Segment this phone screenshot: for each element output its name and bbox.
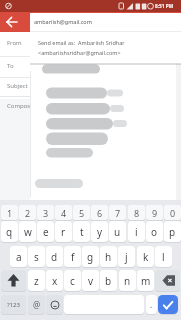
button[interactable]: 8 xyxy=(128,205,145,220)
staticText: y xyxy=(97,225,103,239)
staticText: b xyxy=(105,274,112,288)
staticText: v xyxy=(88,274,94,288)
staticText: h xyxy=(105,250,112,264)
staticText: 3 xyxy=(43,207,49,219)
button[interactable]: s xyxy=(28,246,45,267)
staticText: f xyxy=(71,250,75,264)
staticText: g xyxy=(87,250,94,264)
staticText: 4 xyxy=(61,207,67,219)
button[interactable]: h xyxy=(100,246,117,267)
staticText: p xyxy=(169,225,176,239)
button[interactable]: f xyxy=(64,246,81,267)
staticText: k xyxy=(143,250,149,264)
button[interactable] xyxy=(30,13,181,31)
button[interactable]: o xyxy=(146,221,163,242)
button[interactable]: i xyxy=(128,221,145,242)
button[interactable] xyxy=(46,295,63,314)
button[interactable]: j xyxy=(118,246,135,267)
staticText: . xyxy=(150,299,153,310)
staticText: To xyxy=(7,62,14,70)
button[interactable]: e xyxy=(37,221,54,242)
staticText: n xyxy=(124,274,131,288)
button[interactable]: 2 xyxy=(19,205,36,220)
staticText: Send email as: Ambariish Sridhar xyxy=(38,39,125,46)
staticText: @ xyxy=(33,299,41,310)
button[interactable]: w xyxy=(19,221,36,242)
staticText: s xyxy=(34,250,39,264)
staticText: 0 xyxy=(170,207,176,219)
button[interactable]: 5 xyxy=(73,205,90,220)
staticText: q xyxy=(6,225,13,239)
button[interactable]: . xyxy=(146,295,157,314)
button[interactable]: u xyxy=(109,221,126,242)
button[interactable]: 1 xyxy=(1,205,18,220)
button[interactable]: z xyxy=(28,270,45,291)
button[interactable]: 7 xyxy=(109,205,126,220)
staticText: r xyxy=(61,225,66,239)
button[interactable]: d xyxy=(46,246,63,267)
staticText: o xyxy=(151,225,158,239)
button[interactable]: 9 xyxy=(146,205,163,220)
staticText: z xyxy=(34,274,39,288)
button[interactable] xyxy=(155,270,180,291)
staticText: w xyxy=(24,225,32,239)
button[interactable]: r xyxy=(55,221,72,242)
button[interactable]: q xyxy=(1,221,18,242)
staticText: 2 xyxy=(25,207,31,219)
button[interactable]: n xyxy=(119,270,136,291)
staticText: i xyxy=(135,225,138,239)
button[interactable]: y xyxy=(91,221,108,242)
button[interactable] xyxy=(0,12,181,32)
button[interactable]: x xyxy=(46,270,63,291)
staticText: d xyxy=(51,250,58,264)
button[interactable]: l xyxy=(155,246,172,267)
button[interactable]: g xyxy=(82,246,99,267)
staticText: a xyxy=(16,250,22,264)
button[interactable]: c xyxy=(64,270,81,291)
staticText: 9 xyxy=(152,207,158,219)
button[interactable]: b xyxy=(100,270,117,291)
staticText: Compos xyxy=(7,102,31,110)
button[interactable]: p xyxy=(164,221,181,242)
button[interactable] xyxy=(1,270,26,291)
button[interactable]: v xyxy=(82,270,99,291)
staticText: t xyxy=(80,225,84,239)
staticText: Subject xyxy=(7,82,28,90)
staticText: j xyxy=(125,250,128,264)
staticText: ?123 xyxy=(7,301,20,309)
button[interactable]: k xyxy=(137,246,154,267)
button[interactable] xyxy=(30,32,181,64)
staticText: c xyxy=(70,274,75,288)
staticText: m xyxy=(141,274,151,288)
staticText: 7 xyxy=(115,207,121,219)
staticText: 1 xyxy=(7,207,13,219)
button[interactable] xyxy=(158,295,178,314)
button[interactable]: @ xyxy=(28,295,45,314)
button[interactable]: a xyxy=(10,246,27,267)
staticText: <ambariishsridhar@gmail.com> xyxy=(38,49,121,56)
button[interactable]: 0 xyxy=(164,205,181,220)
staticText: From xyxy=(7,39,22,47)
button[interactable]: 3 xyxy=(37,205,54,220)
staticText: 6 xyxy=(97,207,103,219)
button[interactable]: m xyxy=(137,270,154,291)
staticText: u xyxy=(114,225,121,239)
button[interactable]: 6 xyxy=(91,205,108,220)
button[interactable] xyxy=(0,12,24,32)
staticText: l xyxy=(162,250,165,264)
staticText: x xyxy=(52,274,58,288)
button[interactable]: 4 xyxy=(55,205,72,220)
button[interactable]: ?123 xyxy=(1,295,26,314)
button[interactable]: t xyxy=(73,221,90,242)
staticText: ambariish@gmail.com xyxy=(34,18,92,25)
staticText: 8:51 PM xyxy=(155,3,174,10)
staticText: e xyxy=(43,225,49,239)
staticText: 5 xyxy=(79,207,85,219)
staticText: 8 xyxy=(134,207,140,219)
